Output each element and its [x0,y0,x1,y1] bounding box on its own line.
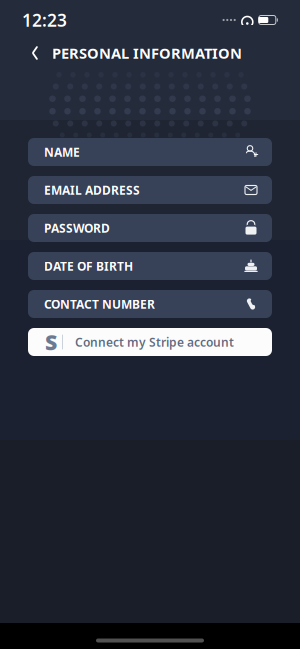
button[interactable]: DATE OF BIRTH [28,252,272,280]
button[interactable]: EMAIL ADDRESS [28,176,272,204]
button[interactable]: S [28,328,272,356]
staticText: S [45,328,57,356]
button[interactable]: CONTACT NUMBER [28,290,272,318]
staticText: NAME [44,144,80,160]
staticText: DATE OF BIRTH [44,258,133,274]
staticText: PASSWORD [44,220,110,236]
button[interactable]: PASSWORD [28,214,272,242]
button[interactable]: NAME [28,138,272,166]
staticText: EMAIL ADDRESS [44,182,140,198]
staticText: CONTACT NUMBER [44,296,155,312]
staticText: 12:23 [22,8,67,31]
staticText: Connect my Stripe account [75,334,234,350]
button[interactable]: Back [18,36,52,70]
staticText: PERSONAL INFORMATION [52,43,242,63]
